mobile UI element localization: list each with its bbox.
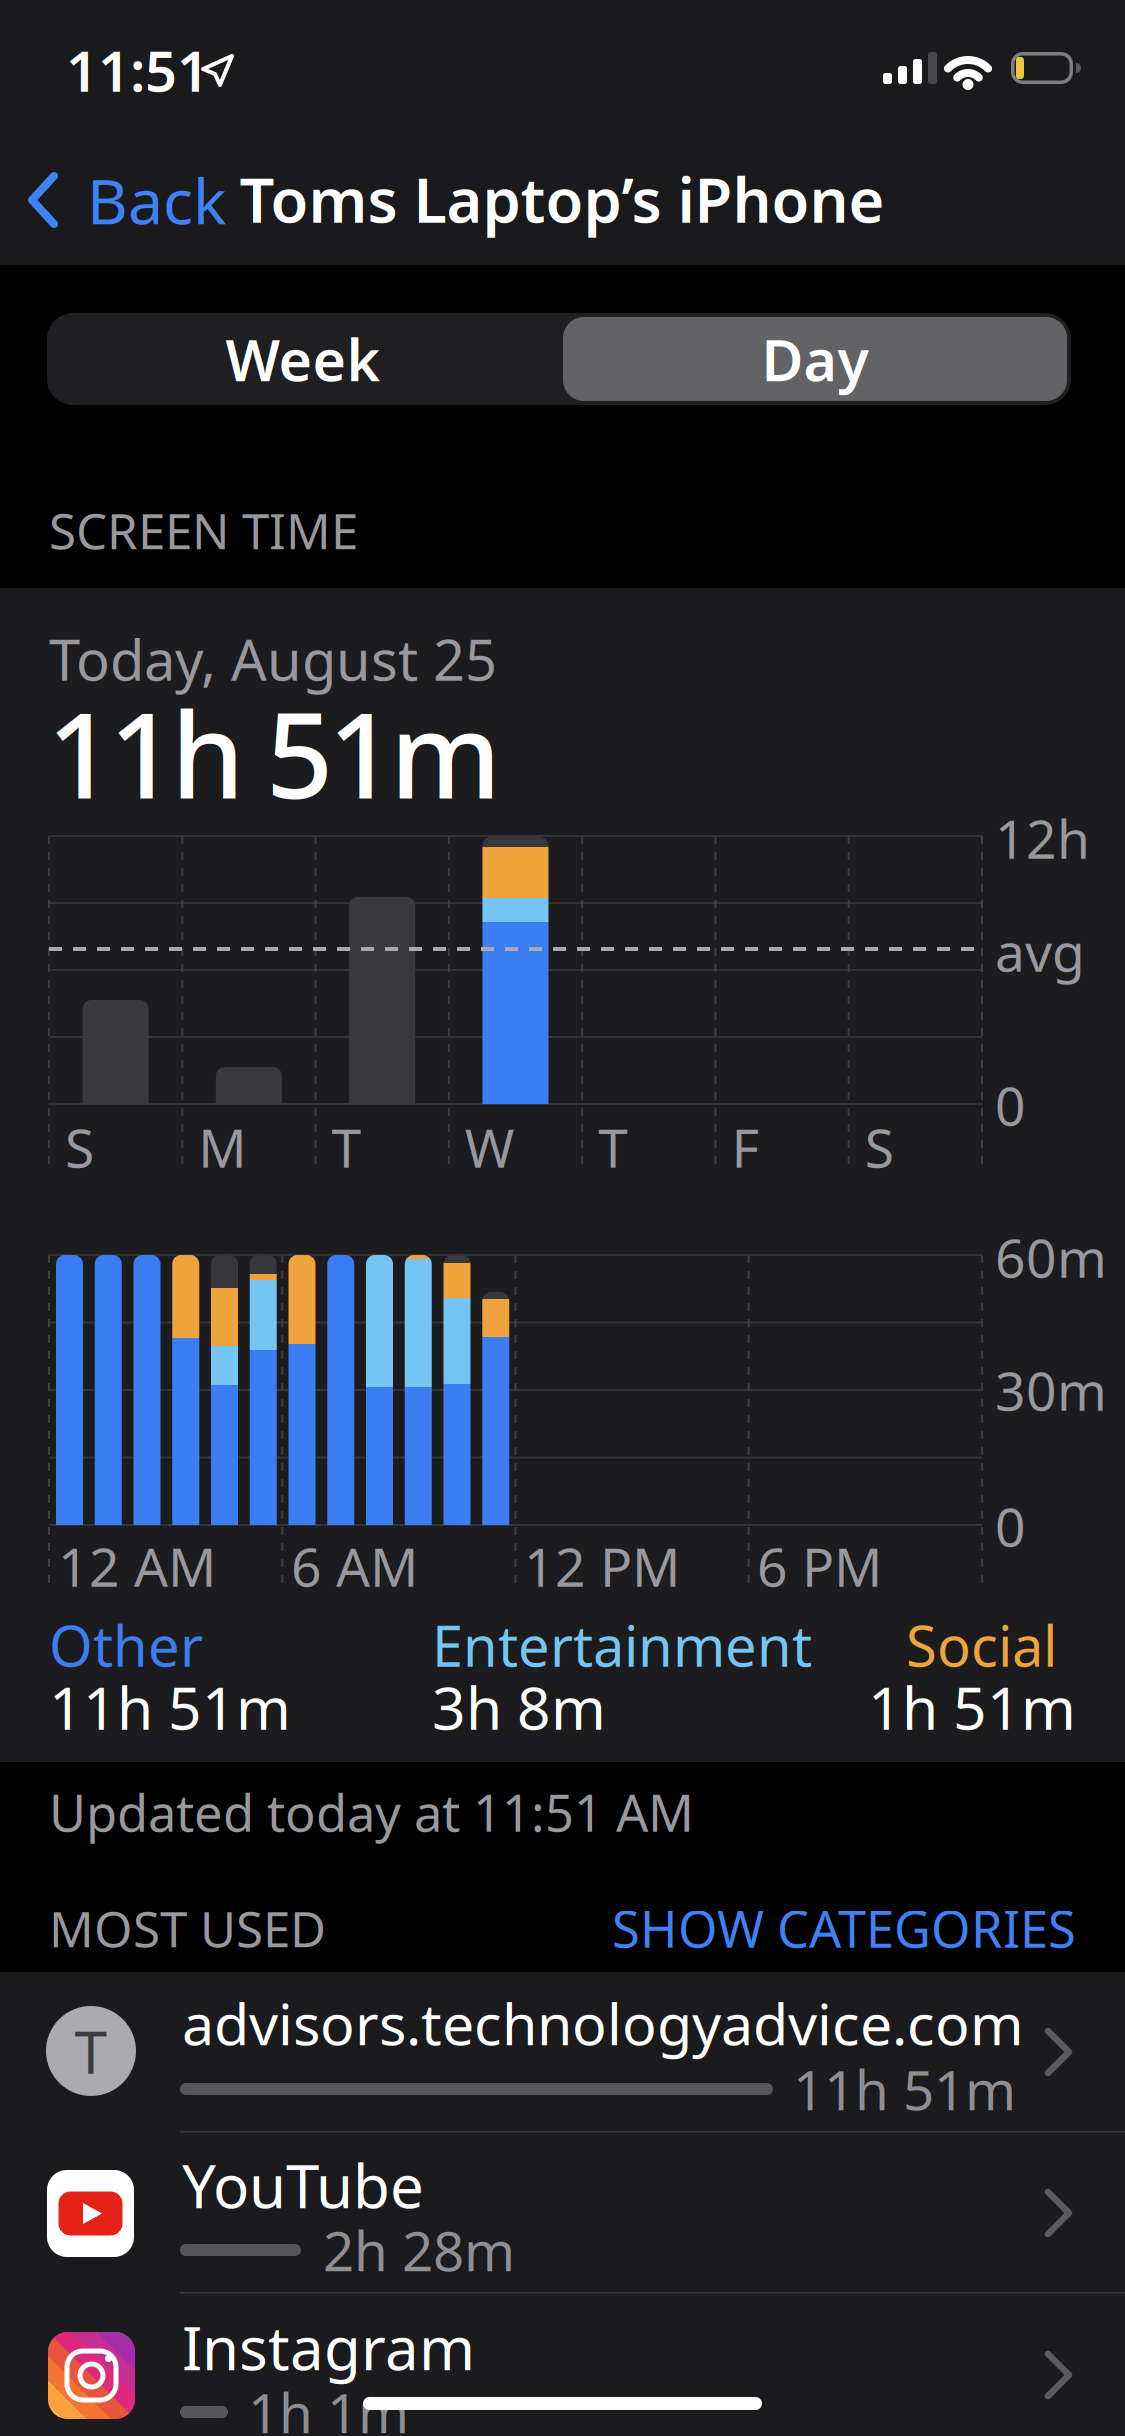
staticText: 11h 51m <box>793 2053 1016 2125</box>
staticText: 0 <box>995 1491 1026 1561</box>
staticText: Day <box>761 321 868 397</box>
staticText: 12 PM <box>524 1531 680 1601</box>
staticText: 11h 51m <box>49 1668 291 1746</box>
staticText: 11:51 <box>66 33 209 107</box>
staticText: T <box>74 2012 107 2090</box>
staticText: Other <box>49 1608 203 1682</box>
staticText: Instagram <box>182 2307 475 2387</box>
button[interactable]: SHOW CATEGORIES <box>0 0 600 61</box>
staticText: 12h <box>995 803 1090 873</box>
staticText: 1h 1m <box>248 2376 409 2436</box>
staticText: Toms Laptop’s iPhone <box>239 158 884 240</box>
staticText: 60m <box>995 1222 1107 1292</box>
button[interactable]: T <box>0 1972 1125 2131</box>
staticText: advisors.technologyadvice.com <box>182 1985 1024 2061</box>
staticText: F <box>731 1112 759 1182</box>
staticText: 6 PM <box>757 1531 882 1601</box>
staticText: T <box>598 1112 628 1182</box>
button[interactable]: Day <box>559 313 1071 405</box>
staticText: 2h 28m <box>323 2214 515 2286</box>
staticText: SCREEN TIME <box>49 497 358 563</box>
staticText: T <box>332 1112 362 1182</box>
staticText: Social <box>906 1608 1057 1682</box>
staticText: 1h 51m <box>868 1668 1076 1746</box>
staticText: 30m <box>995 1355 1107 1425</box>
staticText: SHOW CATEGORIES <box>612 1894 1076 1962</box>
staticText: Back <box>87 158 226 242</box>
staticText: S <box>65 1112 94 1182</box>
staticText: S <box>865 1112 894 1182</box>
staticText: W <box>465 1112 515 1182</box>
staticText: MOST USED <box>49 1895 326 1961</box>
staticText: Entertainment <box>432 1608 812 1682</box>
button[interactable]: Back <box>30 0 290 250</box>
staticText: 12 AM <box>58 1531 216 1601</box>
staticText: 11h 51m <box>47 675 501 831</box>
staticText: 0 <box>995 1070 1026 1140</box>
staticText: M <box>198 1112 246 1182</box>
staticText: avg <box>995 916 1085 986</box>
button[interactable]: Week <box>47 313 559 405</box>
staticText: Today, August 25 <box>49 622 497 696</box>
staticText: 6 AM <box>291 1531 418 1601</box>
staticText: Week <box>225 321 380 397</box>
button[interactable]: Instagram <box>0 2293 1125 2436</box>
staticText: YouTube <box>182 2145 424 2225</box>
staticText: Updated today at 11:51 AM <box>49 1778 694 1846</box>
staticText: 3h 8m <box>432 1668 606 1746</box>
button[interactable]: YouTube <box>0 2132 1125 2292</box>
